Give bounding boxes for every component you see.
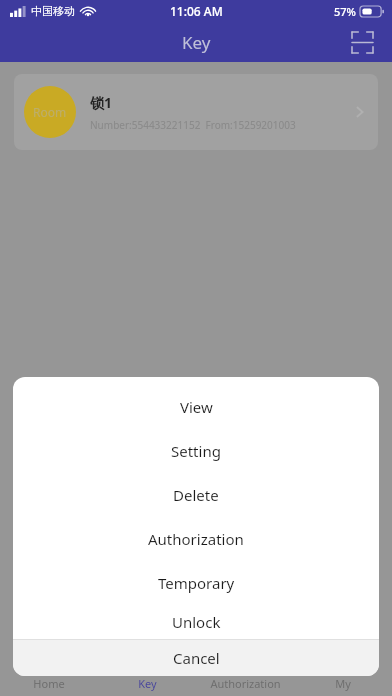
button[interactable]: Key <box>98 670 196 696</box>
button[interactable]: Authorization <box>13 517 379 561</box>
staticText: My <box>335 676 351 691</box>
button[interactable]: Home <box>0 670 98 696</box>
staticText: Key <box>182 31 211 54</box>
staticText: Home <box>33 676 65 691</box>
button[interactable]: Delete <box>13 473 379 517</box>
staticText: 锁1 <box>90 93 113 112</box>
staticText: 57% <box>334 4 356 19</box>
button[interactable]: Authorization <box>196 670 294 696</box>
staticText: 11:06 AM <box>170 3 223 19</box>
button[interactable]: View <box>13 385 379 429</box>
staticText: Key <box>138 676 157 691</box>
staticText: View <box>180 397 213 417</box>
staticText: Authorization <box>148 529 244 549</box>
staticText: Room <box>33 104 67 120</box>
staticText: Authorization <box>210 676 281 691</box>
button[interactable]: Setting <box>13 429 379 473</box>
button[interactable]: Room <box>14 74 378 150</box>
staticText: Temporary <box>158 573 235 593</box>
staticText: Setting <box>171 441 221 461</box>
staticText: Delete <box>173 485 219 505</box>
staticText: Unlock <box>172 612 221 632</box>
button[interactable]: Unlock <box>13 605 379 639</box>
button[interactable]: Scan QR code <box>344 24 380 60</box>
staticText: Cancel <box>173 648 220 668</box>
button[interactable]: My <box>294 670 392 696</box>
button[interactable]: Cancel <box>13 640 379 676</box>
staticText: 中国移动 <box>31 4 75 18</box>
button[interactable]: Temporary <box>13 561 379 605</box>
staticText: Number:554433221152 From:15259201003 <box>90 118 296 132</box>
